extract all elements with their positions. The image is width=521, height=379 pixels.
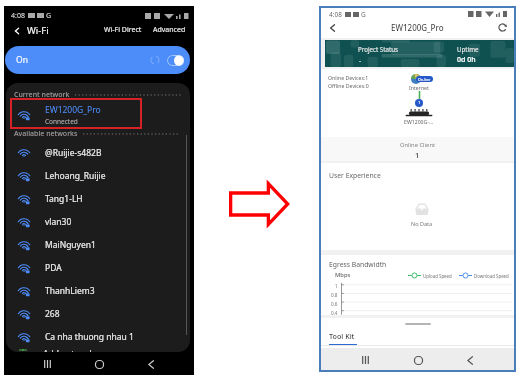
staticText: vlan30 <box>45 216 72 228</box>
staticText: Wi-Fi Direct <box>104 25 142 35</box>
button[interactable]: Wi-Fi Direct <box>102 23 144 37</box>
staticText: Upload Speed <box>423 273 452 279</box>
staticText: - <box>359 56 362 65</box>
staticText: Connected <box>45 117 78 126</box>
button[interactable]: Recents <box>38 355 56 373</box>
staticText: PDA <box>45 262 62 274</box>
staticText: On-line <box>418 77 431 82</box>
staticText: Tool Kit <box>329 331 355 341</box>
staticText: Tang1-LH <box>45 193 83 205</box>
button[interactable]: @Ruijie-s482B <box>6 141 190 164</box>
button[interactable]: ThanhLiem3 <box>6 279 190 302</box>
staticText: 0.8 <box>331 292 338 298</box>
button[interactable]: Home <box>409 351 427 369</box>
staticText: Offline Devices:0 <box>328 82 369 89</box>
staticText: User Experience <box>329 171 381 180</box>
button[interactable]: Advanced <box>151 23 188 37</box>
staticText: Advanced <box>153 25 186 35</box>
staticText: Wi-Fi <box>27 24 49 37</box>
button[interactable]: Add network <box>6 348 190 352</box>
staticText: 0.4 <box>331 310 338 316</box>
staticText: EW1200G_Pro <box>391 22 444 33</box>
staticText: Lehoang_Ruijie <box>45 170 106 182</box>
staticText: No Data <box>411 220 433 227</box>
button[interactable]: Back <box>142 355 160 373</box>
staticText: 1 <box>418 100 421 106</box>
staticText: Available networks <box>14 129 78 139</box>
staticText: 1 <box>415 150 420 160</box>
button[interactable]: On <box>5 46 190 74</box>
button[interactable]: Back <box>10 24 23 37</box>
staticText: Online Devices:1 <box>328 74 369 81</box>
staticText: Download Speed <box>474 273 509 279</box>
staticText: ThanhLiem3 <box>45 285 95 297</box>
button[interactable]: vlan30 <box>6 210 190 233</box>
button[interactable]: Lehoang_Ruijie <box>6 164 190 187</box>
button[interactable]: EW1200G_Pro <box>6 102 190 127</box>
staticText: Online Client <box>400 141 436 149</box>
button[interactable]: Back <box>461 351 479 369</box>
staticText: Internet <box>409 84 429 91</box>
button[interactable]: Ca nha thuong nhau 1 <box>6 325 190 348</box>
staticText: 0.6 <box>331 301 338 307</box>
button[interactable]: 268 <box>6 302 190 325</box>
staticText: G <box>361 10 366 19</box>
button[interactable]: Home <box>90 355 108 373</box>
staticText: Tools <box>329 347 344 349</box>
button[interactable]: PDA <box>6 256 190 279</box>
staticText: Project Status <box>358 45 398 53</box>
staticText: 4:08 <box>329 10 342 19</box>
staticText: 268 <box>45 308 60 320</box>
staticText: EW1200G-... <box>404 118 434 125</box>
button[interactable]: Refresh <box>496 21 509 34</box>
staticText: On <box>16 54 28 66</box>
staticText: G <box>46 11 52 21</box>
staticText: EW1200G_Pro <box>45 104 101 116</box>
button[interactable]: Tang1-LH <box>6 187 190 210</box>
staticText: 0d 0h <box>457 55 476 65</box>
staticText: Uptime <box>457 45 479 53</box>
staticText: Add network <box>43 348 95 352</box>
staticText: 1 <box>335 283 338 289</box>
button[interactable]: Back <box>326 21 339 34</box>
staticText: Ca nha thuong nhau 1 <box>45 331 134 343</box>
staticText: Current network <box>14 90 70 100</box>
button[interactable]: Recents <box>356 351 374 369</box>
staticText: MaiNguyen1 <box>45 239 96 251</box>
button[interactable]: MaiNguyen1 <box>6 233 190 256</box>
staticText: 4:08 <box>11 11 25 21</box>
staticText: Mbps <box>335 271 351 279</box>
staticText: @Ruijie-s482B <box>45 147 102 159</box>
staticText: Egress Bandwidth <box>329 260 387 269</box>
button[interactable]: Tool Kit <box>329 331 357 346</box>
